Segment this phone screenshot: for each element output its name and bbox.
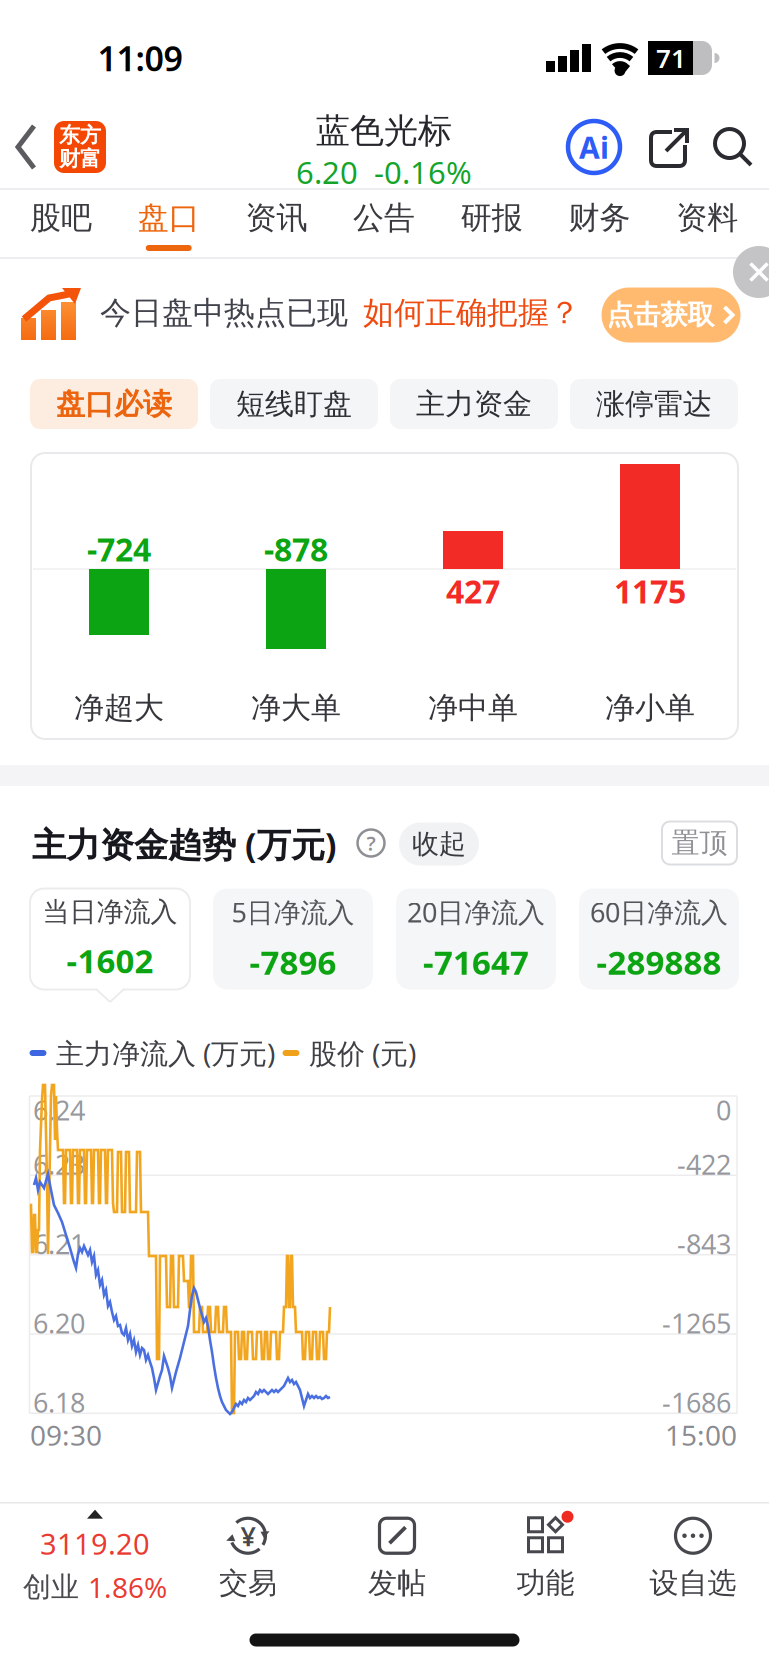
staticText: 20日净流入 — [407, 894, 545, 930]
button[interactable]: 点击获取 — [601, 287, 740, 342]
staticText: 财富 — [59, 145, 101, 172]
staticText: 6.18 — [33, 1384, 85, 1421]
staticText: 1.86% — [88, 1568, 167, 1606]
staticText: 0 — [716, 1092, 731, 1128]
button[interactable]: 盘口必读 — [30, 379, 198, 429]
button[interactable]: 资料 — [655, 190, 759, 246]
button[interactable]: 盘口 — [117, 190, 221, 246]
staticText: 如何正确把握？ — [363, 293, 580, 333]
staticText: ? — [366, 829, 375, 857]
button[interactable]: 当日净流入 — [30, 888, 190, 989]
staticText: -843 — [677, 1225, 731, 1262]
staticText: 今日盘中热点已现 — [100, 293, 348, 333]
staticText: 资料 — [676, 198, 738, 238]
staticText: 盘口 — [138, 198, 200, 238]
button[interactable]: 公告 — [332, 190, 436, 246]
staticText: 6.24 — [33, 1092, 85, 1128]
staticText: 主力资金 — [416, 386, 532, 422]
staticText: -422 — [677, 1146, 731, 1183]
button[interactable]: 短线盯盘 — [210, 379, 378, 429]
staticText: 置顶 — [671, 825, 727, 861]
staticText: -0.16% — [374, 151, 472, 193]
staticText: 5日净流入 — [231, 894, 354, 930]
staticText: -289888 — [596, 939, 721, 984]
staticText: 3119.20 — [40, 1524, 150, 1563]
button[interactable]: 东方财富 — [54, 121, 106, 173]
button[interactable]: 60日净流入 — [579, 888, 739, 989]
button[interactable]: 主力资金 — [390, 379, 558, 429]
staticText: -7896 — [249, 939, 336, 984]
staticText: 主力净流入 (万元) — [56, 1034, 275, 1072]
staticText: 11:09 — [97, 35, 182, 81]
staticText: 短线盯盘 — [236, 386, 352, 422]
staticText: Ai — [579, 127, 609, 167]
button[interactable]: Search — [712, 126, 756, 170]
staticText: 创业 — [23, 1570, 79, 1605]
button[interactable]: 5日净流入 — [213, 888, 373, 989]
staticText: -1602 — [66, 938, 153, 983]
button[interactable]: 收起 — [399, 822, 479, 865]
staticText: 股吧 — [30, 198, 92, 238]
staticText: 6.20 — [33, 1305, 85, 1341]
button[interactable]: 资讯 — [224, 190, 328, 246]
button[interactable]: 设自选 — [649, 1515, 736, 1601]
button[interactable]: Back — [8, 118, 52, 176]
staticText: 资讯 — [245, 198, 307, 238]
staticText: 6.20 — [296, 151, 358, 193]
staticText: 净小单 — [605, 689, 695, 727]
staticText: 涨停雷达 — [596, 386, 712, 422]
staticText: 净超大 — [74, 689, 164, 727]
staticText: 公告 — [353, 198, 415, 238]
staticText: 1175 — [614, 569, 686, 613]
staticText: -878 — [264, 527, 328, 571]
button[interactable]: Close — [733, 246, 769, 298]
staticText: 研报 — [461, 198, 523, 238]
staticText: 71 — [656, 40, 686, 76]
staticText: 蓝色光标 — [316, 110, 452, 152]
staticText: 设自选 — [649, 1565, 736, 1601]
button[interactable]: 财务 — [547, 190, 651, 246]
staticText: 点击获取 — [606, 298, 714, 332]
button[interactable]: 3119.20 — [23, 1510, 167, 1606]
button[interactable]: 发帖 — [368, 1515, 426, 1601]
button[interactable]: Share — [645, 125, 691, 171]
staticText: 收起 — [412, 827, 466, 861]
staticText: 交易 — [219, 1565, 277, 1601]
staticText: 净大单 — [251, 689, 341, 727]
staticText: 股价 (元) — [309, 1034, 416, 1072]
staticText: -724 — [87, 527, 151, 571]
button[interactable]: 功能 — [516, 1515, 574, 1601]
button[interactable]: ¥ — [219, 1515, 277, 1601]
staticText: 发帖 — [368, 1565, 426, 1601]
staticText: 60日净流入 — [590, 894, 728, 930]
button[interactable]: 今日盘中热点已现 — [0, 260, 769, 373]
staticText: 6.23 — [33, 1146, 85, 1183]
staticText: 盘口必读 — [56, 386, 172, 422]
staticText: ¥ — [240, 1517, 255, 1554]
button[interactable]: 说明 — [356, 828, 386, 858]
staticText: 427 — [446, 569, 500, 613]
staticText: 当日净流入 — [42, 895, 177, 929]
button[interactable]: 涨停雷达 — [570, 379, 738, 429]
staticText: 15:00 — [665, 1416, 737, 1454]
button[interactable]: 20日净流入 — [396, 888, 556, 989]
button[interactable]: Ai 助手 — [567, 120, 621, 174]
staticText: 功能 — [516, 1565, 574, 1601]
button[interactable]: 置顶 — [662, 821, 737, 864]
staticText: -1265 — [662, 1305, 731, 1341]
staticText: 09:30 — [30, 1416, 102, 1454]
staticText: 东方 — [59, 122, 101, 148]
staticText: -71647 — [423, 939, 529, 984]
staticText: 6.21 — [33, 1225, 85, 1262]
button[interactable]: 研报 — [440, 190, 544, 246]
staticText: 净中单 — [428, 689, 518, 727]
staticText: 主力资金趋势 (万元) — [32, 821, 337, 867]
staticText: -1686 — [662, 1384, 731, 1421]
button[interactable]: 股吧 — [9, 190, 113, 246]
staticText: 财务 — [568, 198, 630, 238]
